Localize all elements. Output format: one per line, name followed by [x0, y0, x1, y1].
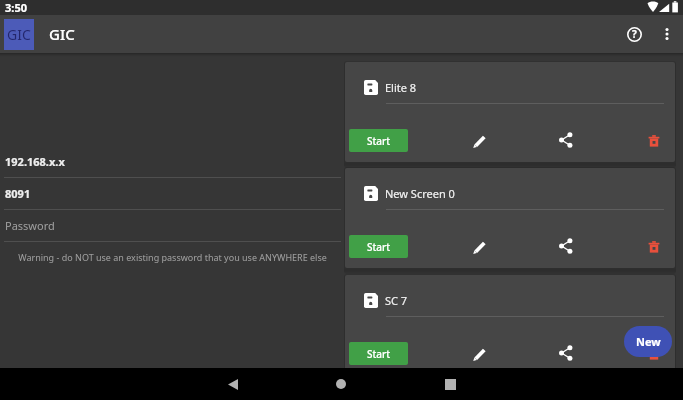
staticText: 3:50 — [5, 0, 27, 15]
button[interactable]: Share — [552, 232, 580, 260]
staticText: SC 7 — [385, 293, 408, 308]
button[interactable]: Back — [219, 370, 247, 398]
staticText: Start — [367, 240, 391, 254]
staticText: 192.168.x.x — [5, 154, 65, 169]
button[interactable]: Recent apps — [436, 370, 464, 398]
button[interactable]: 8091 — [4, 178, 341, 210]
button[interactable]: SC 7 — [345, 275, 675, 375]
button[interactable]: Elite 8 — [345, 62, 675, 162]
staticText: GIC — [7, 25, 31, 44]
staticText: Start — [367, 347, 391, 361]
button[interactable]: Delete — [640, 127, 668, 155]
staticText: New Screen 0 — [385, 186, 455, 201]
button[interactable]: Help — [618, 17, 650, 51]
staticText: ? — [632, 27, 637, 41]
button[interactable]: Start — [349, 235, 408, 258]
staticText: 8091 — [5, 186, 31, 201]
staticText: Password — [5, 218, 55, 233]
button[interactable]: Share — [552, 126, 580, 154]
button[interactable]: Password — [4, 210, 341, 242]
button[interactable]: Share — [552, 339, 580, 367]
staticText: Warning - do NOT use an existing passwor… — [6, 251, 339, 263]
button[interactable]: Delete — [640, 340, 668, 368]
button[interactable]: 192.168.x.x — [4, 146, 341, 178]
button[interactable]: Start — [349, 129, 408, 152]
button[interactable]: Edit — [465, 127, 493, 155]
button[interactable]: Delete — [640, 233, 668, 261]
button[interactable]: Start — [349, 342, 408, 365]
staticText: Start — [367, 134, 391, 148]
staticText: GIC — [49, 24, 75, 44]
button[interactable]: Home — [327, 370, 355, 398]
staticText: Elite 8 — [385, 80, 417, 95]
button[interactable]: More options — [651, 17, 683, 51]
button[interactable]: Edit — [465, 233, 493, 261]
button[interactable]: Edit — [465, 340, 493, 368]
button[interactable]: New — [624, 326, 672, 357]
staticText: New — [636, 334, 661, 349]
button[interactable]: New Screen 0 — [345, 168, 675, 268]
